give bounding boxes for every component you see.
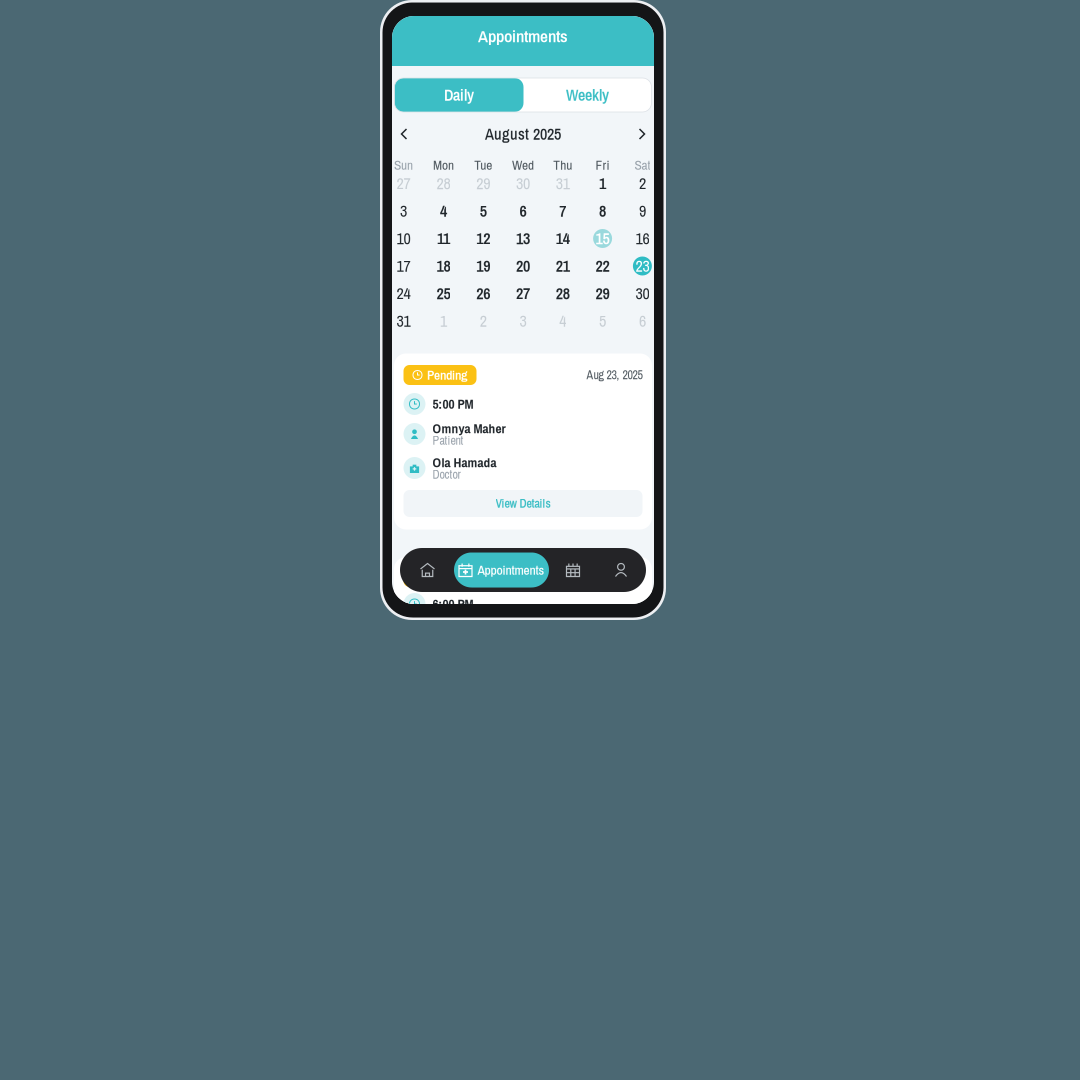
staticText: 6:00 PM <box>432 595 473 613</box>
staticText: 28 <box>436 173 450 194</box>
staticText: 12 <box>476 228 490 249</box>
staticText: 27 <box>397 173 411 194</box>
staticText: 7 <box>559 200 566 222</box>
staticText: 27 <box>516 283 530 304</box>
staticText: Mon <box>433 156 454 174</box>
staticText: 1 <box>440 310 447 332</box>
button[interactable]: Schedule <box>549 548 597 591</box>
staticText: 30 <box>516 173 530 194</box>
button[interactable]: Previous month <box>392 123 416 145</box>
staticText: 3 <box>519 310 526 332</box>
staticText: 20 <box>516 255 530 277</box>
staticText: 1 <box>599 173 606 194</box>
staticText: Doctor <box>432 466 460 483</box>
staticText: Appointments <box>478 24 568 48</box>
staticText: 6 <box>639 310 646 332</box>
staticText: 21 <box>556 255 570 277</box>
staticText: Pending <box>427 366 467 384</box>
staticText: 25 <box>436 283 450 304</box>
staticText: 6 <box>519 200 526 222</box>
button[interactable]: Daily <box>394 78 523 112</box>
staticText: 11 <box>437 228 450 249</box>
staticText: 5 <box>480 200 487 222</box>
staticText: 4 <box>440 200 447 222</box>
staticText: 13 <box>516 228 530 249</box>
staticText: 2 <box>480 310 487 332</box>
staticText: 2 <box>639 173 646 194</box>
staticText: 5 <box>599 310 606 332</box>
staticText: Omnya Maher <box>432 419 505 437</box>
staticText: Daily <box>444 84 474 106</box>
staticText: 4 <box>559 310 566 332</box>
staticText: 3 <box>400 200 407 222</box>
staticText: 9 <box>639 200 646 222</box>
staticText: 24 <box>397 283 411 304</box>
staticText: 8 <box>599 200 606 222</box>
button[interactable]: Weekly <box>523 78 651 112</box>
button[interactable]: Profile <box>597 548 645 591</box>
staticText: Wed <box>512 156 534 174</box>
staticText: 22 <box>596 255 610 277</box>
button[interactable]: Home <box>401 548 454 591</box>
staticText: 23 <box>635 255 649 277</box>
staticText: 15 <box>596 228 610 249</box>
button[interactable]: Appointments <box>454 552 549 587</box>
staticText: 26 <box>476 283 490 304</box>
staticText: 29 <box>596 283 610 304</box>
staticText: Weekly <box>566 84 609 106</box>
button[interactable]: Next month <box>630 123 654 145</box>
staticText: 16 <box>635 228 649 249</box>
staticText: 5:00 PM <box>432 395 473 413</box>
staticText: 30 <box>635 283 649 304</box>
staticText: 10 <box>397 228 411 249</box>
staticText: 17 <box>397 255 411 277</box>
staticText: Thu <box>553 156 572 174</box>
staticText: Tue <box>474 156 492 174</box>
staticText: 31 <box>397 310 411 332</box>
button[interactable]: View Details <box>403 490 642 517</box>
staticText: Pending <box>427 568 467 586</box>
staticText: Sat <box>634 156 650 174</box>
staticText: Sun <box>394 156 413 174</box>
staticText: 29 <box>476 173 490 194</box>
staticText: Ola Hamada <box>432 453 496 471</box>
staticText: Aug 24, 2025 <box>586 569 642 585</box>
staticText: 28 <box>556 283 570 304</box>
staticText: 19 <box>476 255 490 277</box>
staticText: 14 <box>556 228 570 249</box>
staticText: Patient <box>432 432 463 449</box>
staticText: Aug 23, 2025 <box>586 367 642 383</box>
staticText: 31 <box>556 173 570 194</box>
staticText: August 2025 <box>485 123 561 145</box>
staticText: Appointments <box>477 561 544 579</box>
staticText: View Details <box>495 495 550 512</box>
staticText: Fri <box>596 156 610 174</box>
staticText: 18 <box>436 255 450 277</box>
